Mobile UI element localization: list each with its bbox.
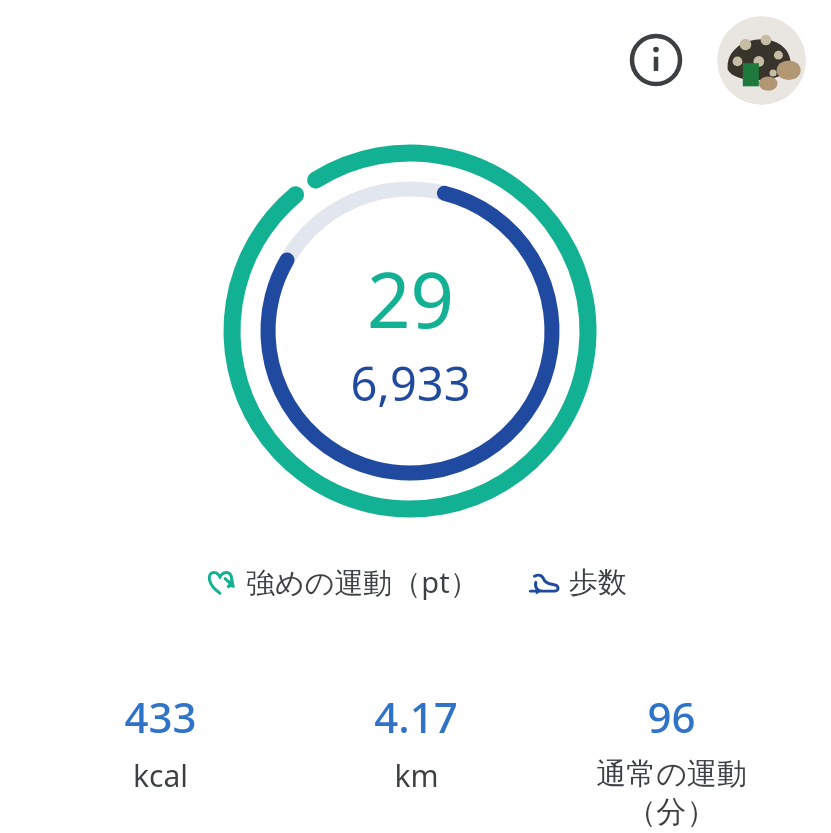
button[interactable]: 強めの運動（pt） (204, 562, 479, 602)
staticText: 433 (124, 688, 197, 745)
staticText: 29 (367, 247, 454, 351)
staticText: 通常の運動 （分） (596, 755, 747, 831)
staticText: 歩数 (569, 564, 627, 601)
button[interactable]: Information (623, 27, 689, 93)
button[interactable]: 歩数 (527, 564, 627, 601)
staticText: 96 (647, 688, 696, 745)
staticText: km (394, 755, 439, 796)
button[interactable]: 96 (557, 688, 785, 831)
staticText: 強めの運動（pt） (246, 562, 479, 602)
staticText: 6,933 (350, 351, 471, 415)
staticText: 4.17 (374, 688, 458, 745)
button[interactable]: Daily activity rings (224, 145, 596, 517)
button[interactable]: 433 (46, 688, 274, 796)
staticText: kcal (133, 755, 188, 796)
button[interactable]: 4.17 (302, 688, 530, 796)
button[interactable]: Profile (717, 16, 806, 105)
